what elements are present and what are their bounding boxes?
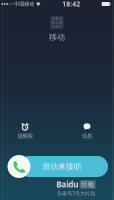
staticText: 经验 [81,180,95,189]
staticText: 信息 [82,133,92,139]
staticText: 中国移动 [14,1,34,7]
staticText: 移动 [49,32,65,42]
staticText: 头条号7天大礼包 [57,190,95,197]
button[interactable]: 提醒我 [10,122,40,140]
staticText: 提醒我 [17,133,32,139]
staticText: 滑动来接听 [42,162,82,171]
button[interactable]: 滑动来接听 [0,154,114,178]
staticText: Baidu [56,179,78,190]
staticText: 18:42 [62,0,80,8]
button[interactable]: 信息 [72,122,102,140]
